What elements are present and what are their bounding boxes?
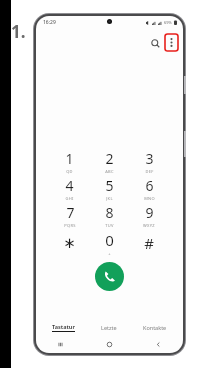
- button[interactable]: 8: [89, 202, 129, 229]
- staticText: JKL: [106, 196, 113, 201]
- staticText: 4: [65, 176, 74, 195]
- staticText: WXYZ: [143, 223, 155, 228]
- button[interactable]: Home: [85, 336, 134, 353]
- staticText: MNO: [144, 196, 155, 201]
- button[interactable]: Search: [147, 35, 163, 51]
- button[interactable]: Call: [95, 262, 124, 291]
- staticText: 1: [65, 149, 74, 168]
- button[interactable]: Kontakte: [132, 319, 178, 336]
- button[interactable]: More options: [165, 34, 178, 51]
- staticText: TUV: [105, 223, 114, 228]
- button[interactable]: Tastatur: [41, 319, 86, 336]
- staticText: 1.: [11, 20, 26, 43]
- button[interactable]: 2: [89, 148, 129, 175]
- staticText: Kontakte: [143, 324, 167, 331]
- staticText: 3: [145, 149, 154, 168]
- staticText: DEF: [145, 169, 154, 174]
- button[interactable]: ∗: [50, 229, 89, 256]
- staticText: 69%: [164, 20, 172, 25]
- staticText: 16:29: [43, 19, 56, 26]
- button[interactable]: Letzte: [86, 319, 132, 336]
- staticText: 2: [105, 149, 114, 168]
- staticText: 0: [105, 230, 114, 250]
- button[interactable]: 5: [89, 175, 129, 202]
- button[interactable]: 6: [129, 175, 169, 202]
- staticText: 6: [145, 176, 154, 195]
- staticText: Tastatur: [52, 323, 75, 330]
- staticText: GHI: [65, 196, 74, 201]
- button[interactable]: 7: [50, 202, 89, 229]
- staticText: Letzte: [101, 324, 117, 331]
- button[interactable]: 9: [129, 202, 169, 229]
- button[interactable]: #: [129, 229, 169, 256]
- button[interactable]: Recents: [36, 336, 85, 353]
- staticText: 7: [66, 203, 75, 222]
- staticText: 5: [105, 176, 114, 195]
- staticText: ABC: [105, 169, 114, 174]
- staticText: ∗: [63, 234, 76, 251]
- button[interactable]: Back: [134, 336, 183, 353]
- staticText: PQRS: [64, 223, 76, 228]
- staticText: #: [144, 233, 154, 253]
- staticText: 9: [145, 203, 154, 222]
- button[interactable]: 1: [50, 148, 89, 175]
- staticText: 8: [105, 203, 114, 222]
- button[interactable]: 0: [89, 229, 129, 256]
- button[interactable]: 4: [50, 175, 89, 202]
- staticText: +: [108, 251, 111, 256]
- button[interactable]: 3: [129, 148, 169, 175]
- staticText: QD: [66, 169, 73, 174]
